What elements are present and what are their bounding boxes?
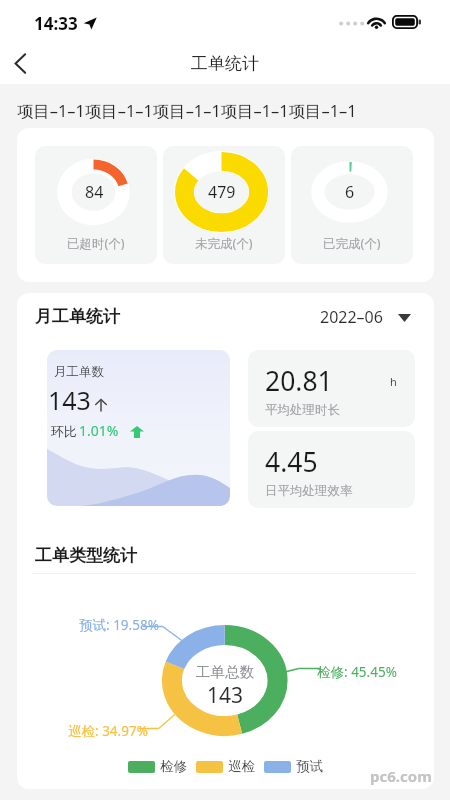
staticText: 项目–1–1项目–1–1项目–1–1项目–1–1项目–1–1 (17, 99, 357, 121)
staticText: 工单总数 (196, 663, 254, 681)
staticText: 未完成(个) (195, 235, 253, 252)
staticText: 143 (48, 383, 91, 417)
staticText: 月工单数 (54, 364, 104, 380)
staticText: 已超时(个) (67, 235, 125, 252)
staticText: 2022–06 (320, 306, 383, 328)
button[interactable]: 479 (163, 146, 285, 264)
staticText: 预试: 19.58% (79, 616, 159, 634)
button[interactable]: 检修 (128, 758, 187, 775)
staticText: 巡检: 34.97% (68, 722, 148, 740)
button[interactable]: 巡检 (196, 758, 255, 775)
staticText: 月工单统计 (35, 306, 120, 327)
staticText: 预试 (296, 758, 323, 775)
staticText: 巡检 (228, 758, 255, 775)
staticText: 20.81 (265, 363, 333, 399)
staticText: 4.45 (265, 444, 318, 480)
staticText: 平均处理时长 (265, 402, 340, 418)
staticText: 工单类型统计 (35, 545, 137, 566)
button[interactable]: 预试 (264, 758, 323, 775)
staticText: h (390, 374, 397, 389)
staticText: 工单统计 (191, 53, 259, 74)
staticText: 14:33 (34, 12, 78, 35)
button[interactable]: Back (0, 43, 40, 83)
staticText: 6 (345, 181, 355, 203)
staticText: 检修 (160, 758, 187, 775)
staticText: 143 (207, 681, 244, 710)
button[interactable]: 84 (35, 146, 157, 264)
button[interactable]: 2022–06 (320, 306, 411, 328)
button[interactable]: 月工单数 (47, 350, 230, 506)
staticText: 479 (208, 181, 236, 203)
staticText: 检修: 45.45% (317, 663, 397, 681)
staticText: 日平均处理效率 (265, 483, 353, 499)
staticText: 环比 (51, 423, 77, 439)
staticText: 84 (85, 181, 104, 203)
staticText: pc6.com (370, 766, 432, 786)
staticText: 1.01% (79, 421, 119, 440)
staticText: 已完成(个) (323, 235, 381, 252)
button[interactable]: 4.45 (248, 431, 415, 508)
button[interactable]: 6 (291, 146, 413, 264)
button[interactable]: 20.81 (248, 350, 415, 427)
